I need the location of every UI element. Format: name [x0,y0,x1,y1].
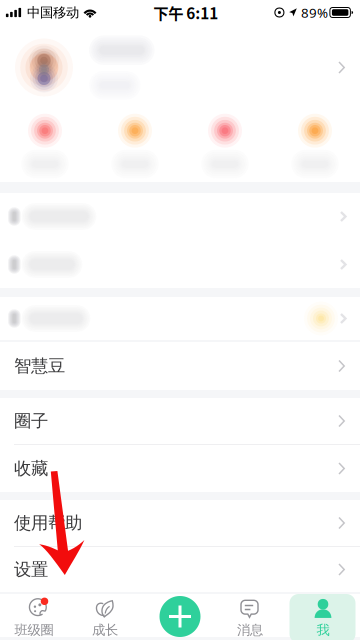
button[interactable]: 班级圈 [0,594,68,637]
button[interactable] [270,110,360,182]
button[interactable]: 消息 [214,594,286,637]
staticText: 使用帮助 [14,512,82,534]
button[interactable]: 设置 [0,547,360,592]
button[interactable] [0,193,360,240]
staticText: 设置 [14,559,48,580]
button[interactable]: New post [159,596,200,637]
staticText: 班级圈 [14,622,53,638]
button[interactable]: 使用帮助 [0,500,360,546]
button[interactable] [90,110,180,182]
staticText: 下午 6:11 [153,1,218,24]
staticText: 收藏 [14,458,48,479]
staticText: 中国移动 [27,4,79,21]
button[interactable]: 我 [286,594,360,637]
staticText: 智慧豆 [14,355,65,377]
button[interactable]: 成长 [68,594,142,637]
button[interactable] [180,110,270,182]
button[interactable] [0,25,360,110]
staticText: 圈子 [14,410,48,432]
staticText: 消息 [237,622,263,638]
staticText: 成长 [92,622,118,638]
button[interactable]: 智慧豆 [0,342,360,390]
staticText: 89% [301,4,328,21]
button[interactable]: 圈子 [0,398,360,444]
button[interactable] [0,297,360,340]
button[interactable]: 收藏 [0,445,360,492]
button[interactable] [0,110,90,182]
staticText: 我 [316,622,329,638]
button[interactable] [0,241,360,288]
